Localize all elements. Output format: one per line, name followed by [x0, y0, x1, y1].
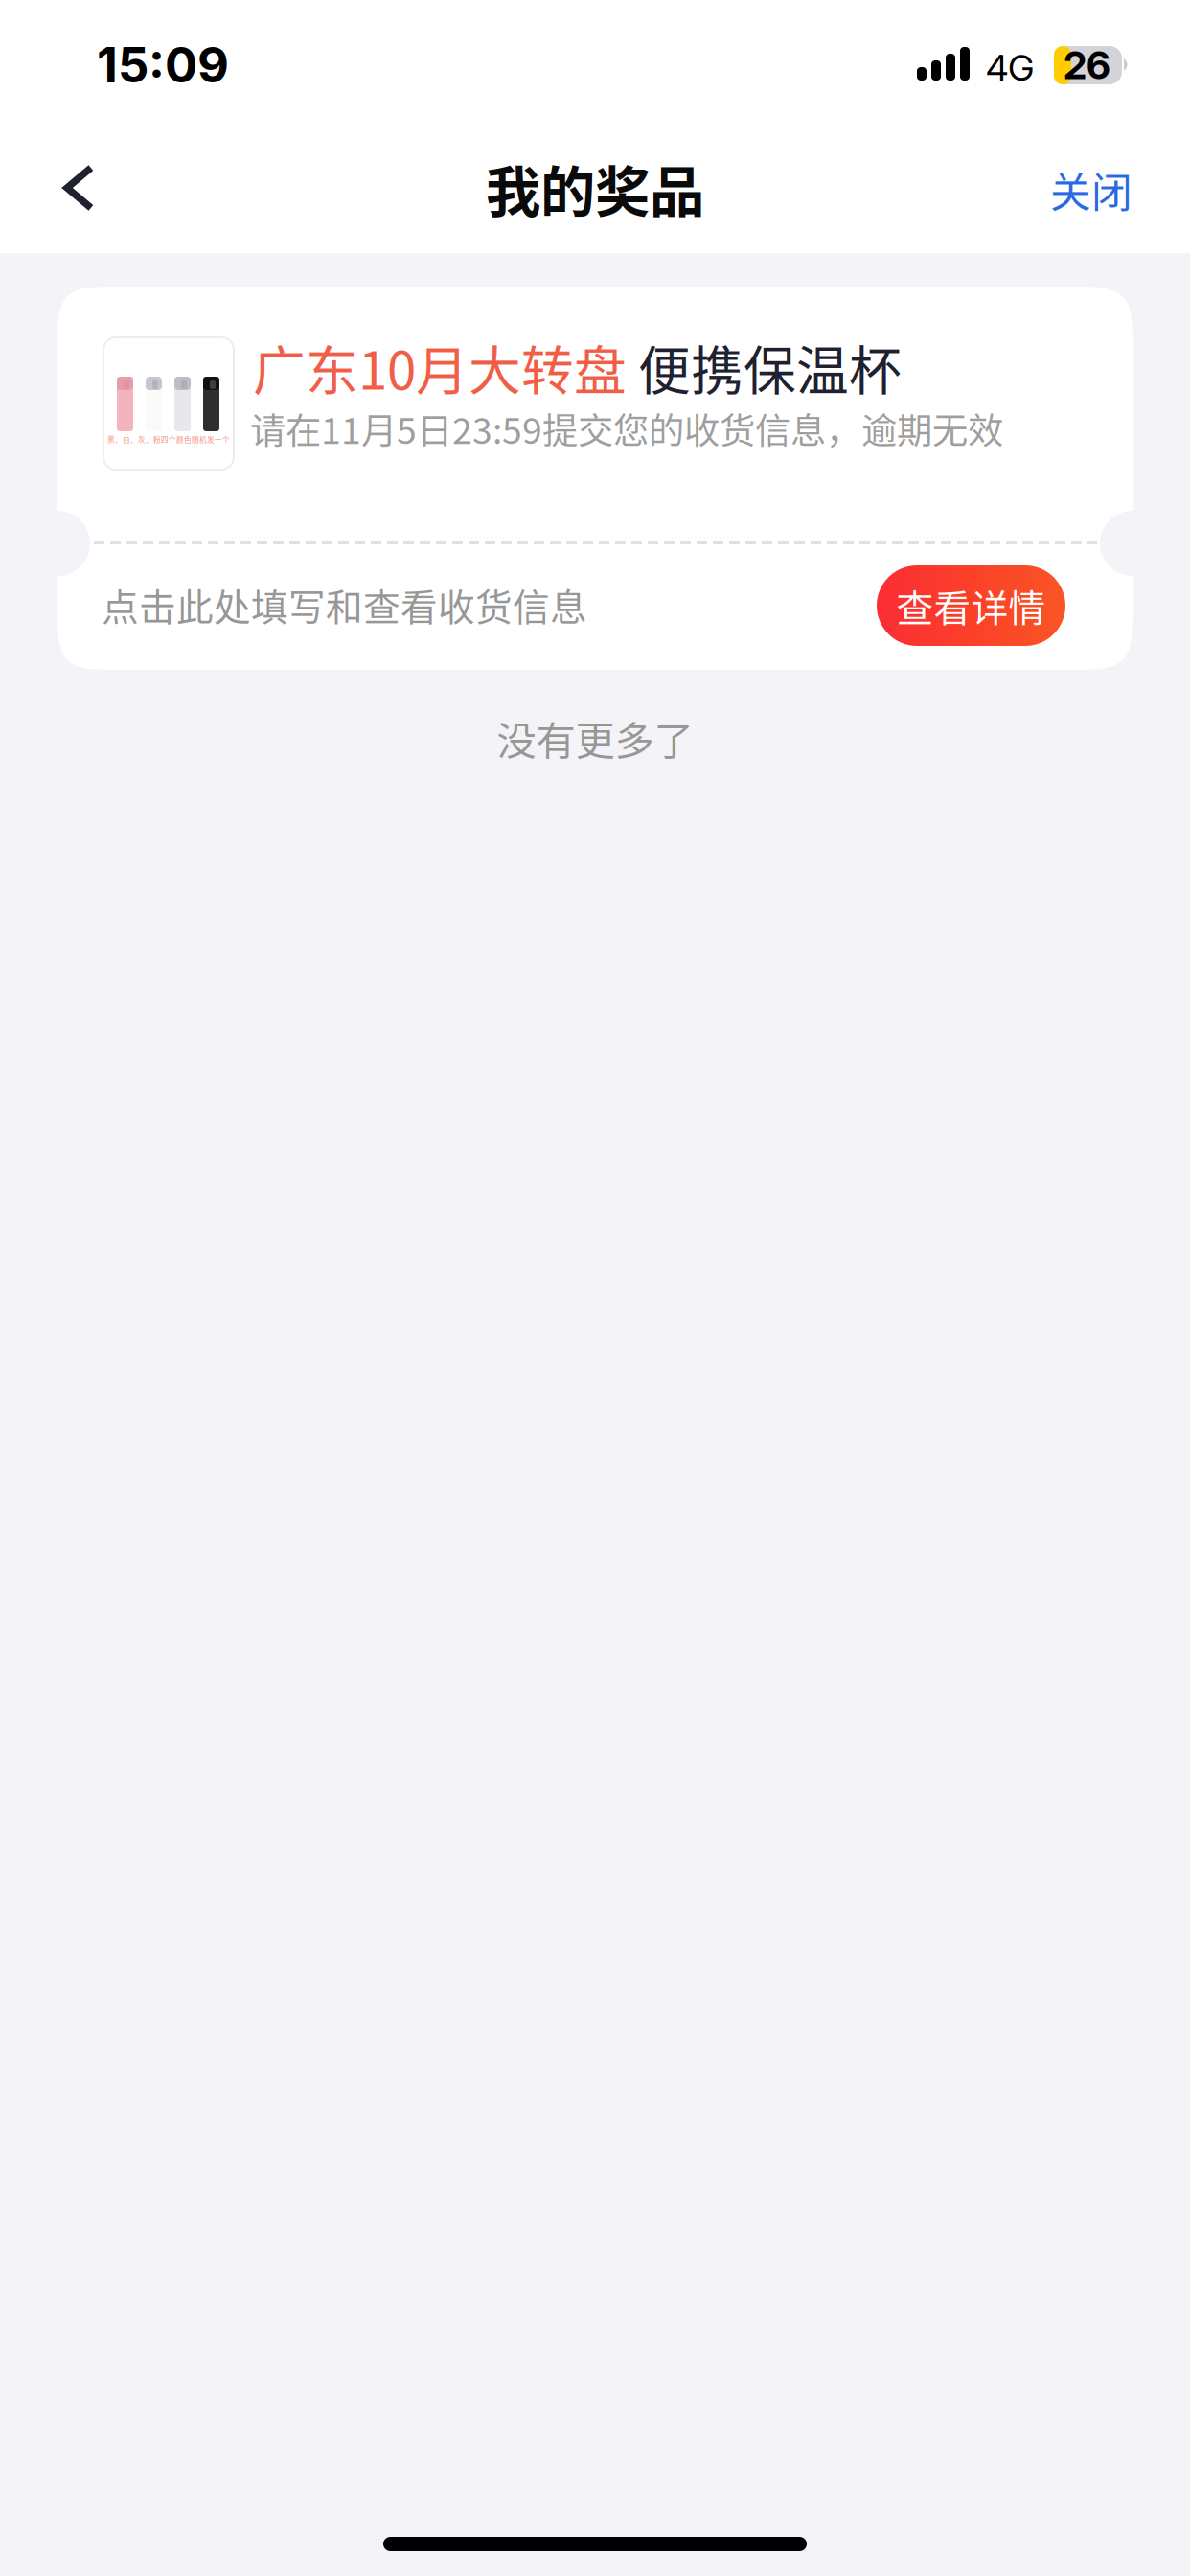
staticText: 26: [1064, 42, 1110, 88]
staticText: 我的奖品: [486, 148, 704, 228]
staticText: 请在11月5日23:59提交您的收货信息，逾期无效: [250, 402, 1003, 454]
staticText: 广东10月大转盘: [253, 329, 627, 405]
staticText: 没有更多了: [497, 709, 693, 767]
staticText: 便携保温杯: [627, 329, 902, 405]
staticText: 查看详情: [896, 579, 1046, 632]
staticText: 15:09: [97, 35, 229, 94]
button[interactable]: 关闭: [1050, 126, 1190, 253]
button[interactable]: 黑、白、灰、粉四个颜色随机发一个: [57, 253, 1133, 670]
staticText: 黑、白、灰、粉四个颜色随机发一个: [107, 434, 230, 445]
button[interactable]: Back: [28, 125, 127, 251]
staticText: 4G: [986, 46, 1034, 89]
staticText: 点击此处填写和查看收货信息: [102, 578, 587, 632]
button[interactable]: 查看详情: [877, 565, 1065, 646]
staticText: 关闭: [1050, 160, 1133, 219]
